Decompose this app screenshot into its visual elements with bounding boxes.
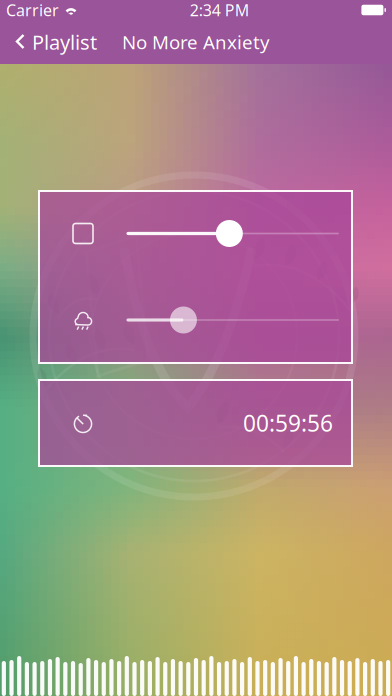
button[interactable]: Music volume [61, 211, 105, 255]
button[interactable]: 00:59:56 [39, 380, 352, 466]
staticText: 00:59:56 [243, 408, 333, 438]
button[interactable]: Playlist [0, 20, 107, 64]
staticText: No More Anxiety [122, 30, 270, 54]
staticText: 2:34 PM [190, 0, 250, 21]
button[interactable]: Rain volume [61, 298, 105, 342]
staticText: Carrier [6, 0, 59, 21]
staticText: Playlist [32, 29, 97, 55]
